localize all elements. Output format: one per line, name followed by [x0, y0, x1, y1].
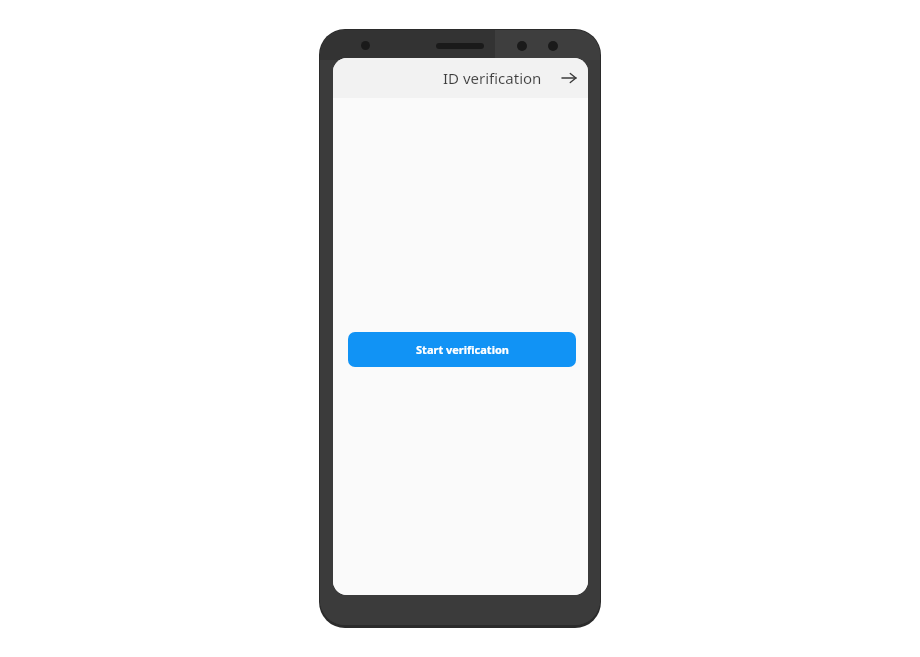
staticText: Start verification [416, 342, 509, 357]
button[interactable]: Start verification [348, 332, 576, 367]
staticText: ID verification [443, 68, 542, 88]
button[interactable]: Next [556, 61, 582, 95]
